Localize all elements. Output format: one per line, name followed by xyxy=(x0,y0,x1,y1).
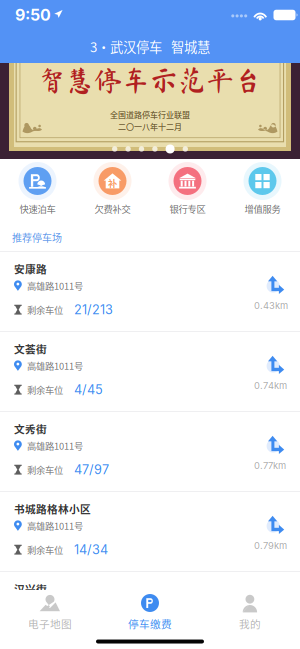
button[interactable]: 增值服务 xyxy=(225,159,300,222)
staticText: 高雄路1011号 xyxy=(27,519,83,532)
staticText: 14/34 xyxy=(74,542,108,557)
staticText: 高雄路1011号 xyxy=(27,279,83,292)
staticText: 推荐停车场 xyxy=(12,230,62,245)
staticText: 剩余车位 xyxy=(27,463,63,476)
staticText: 4/45 xyxy=(74,382,103,397)
staticText: 智慧停车示范平台 xyxy=(38,66,262,94)
staticText: 安康路 xyxy=(14,261,47,276)
staticText: 补 xyxy=(108,176,117,190)
staticText: 高雄路1011号 xyxy=(27,439,83,452)
button[interactable]: 我的 xyxy=(200,590,300,634)
staticText: 电子地图 xyxy=(28,616,72,631)
button[interactable]: 电子地图 xyxy=(0,590,100,634)
staticText: 欠费补交 xyxy=(94,202,130,215)
button[interactable]: 停车缴费 xyxy=(100,590,200,634)
staticText: 增值服务 xyxy=(244,202,280,215)
staticText: 0.74km xyxy=(254,380,287,391)
staticText: 0.79km xyxy=(254,540,287,551)
staticText: 剩余车位 xyxy=(27,383,63,396)
staticText: 书城路格林小区 xyxy=(14,501,91,516)
button[interactable]: 书城路格林小区 xyxy=(0,492,300,571)
staticText: 汉兴街 xyxy=(14,581,47,596)
staticText: 9:50 xyxy=(15,5,51,25)
staticText: 我的 xyxy=(239,616,261,631)
staticText: 0.43km xyxy=(254,300,288,311)
staticText: 文秀街 xyxy=(14,421,47,436)
staticText: 3·武汉停车 智城慧 xyxy=(90,37,210,56)
button[interactable]: 银行专区 xyxy=(150,159,225,222)
staticText: 0.77km xyxy=(254,460,286,471)
button[interactable]: 快速泊车 xyxy=(0,159,75,222)
button[interactable]: 补 xyxy=(75,159,150,222)
staticText: 二〇一八年十二月 xyxy=(118,121,182,132)
staticText: 停车缴费 xyxy=(128,616,172,631)
staticText: 剩余车位 xyxy=(27,543,63,556)
staticText: 银行专区 xyxy=(169,202,205,215)
staticText: 21/213 xyxy=(74,302,113,317)
button[interactable]: 文荟街 xyxy=(0,332,300,411)
staticText: 快速泊车 xyxy=(19,202,55,215)
button[interactable]: 安康路 xyxy=(0,252,300,331)
button[interactable]: 文秀街 xyxy=(0,412,300,491)
staticText: 文荟街 xyxy=(14,341,47,356)
staticText: 高雄路1011号 xyxy=(27,359,83,372)
staticText: 全国道路停车行业联盟 xyxy=(110,109,190,120)
staticText: 剩余车位 xyxy=(27,303,63,316)
staticText: 47/97 xyxy=(74,462,109,477)
